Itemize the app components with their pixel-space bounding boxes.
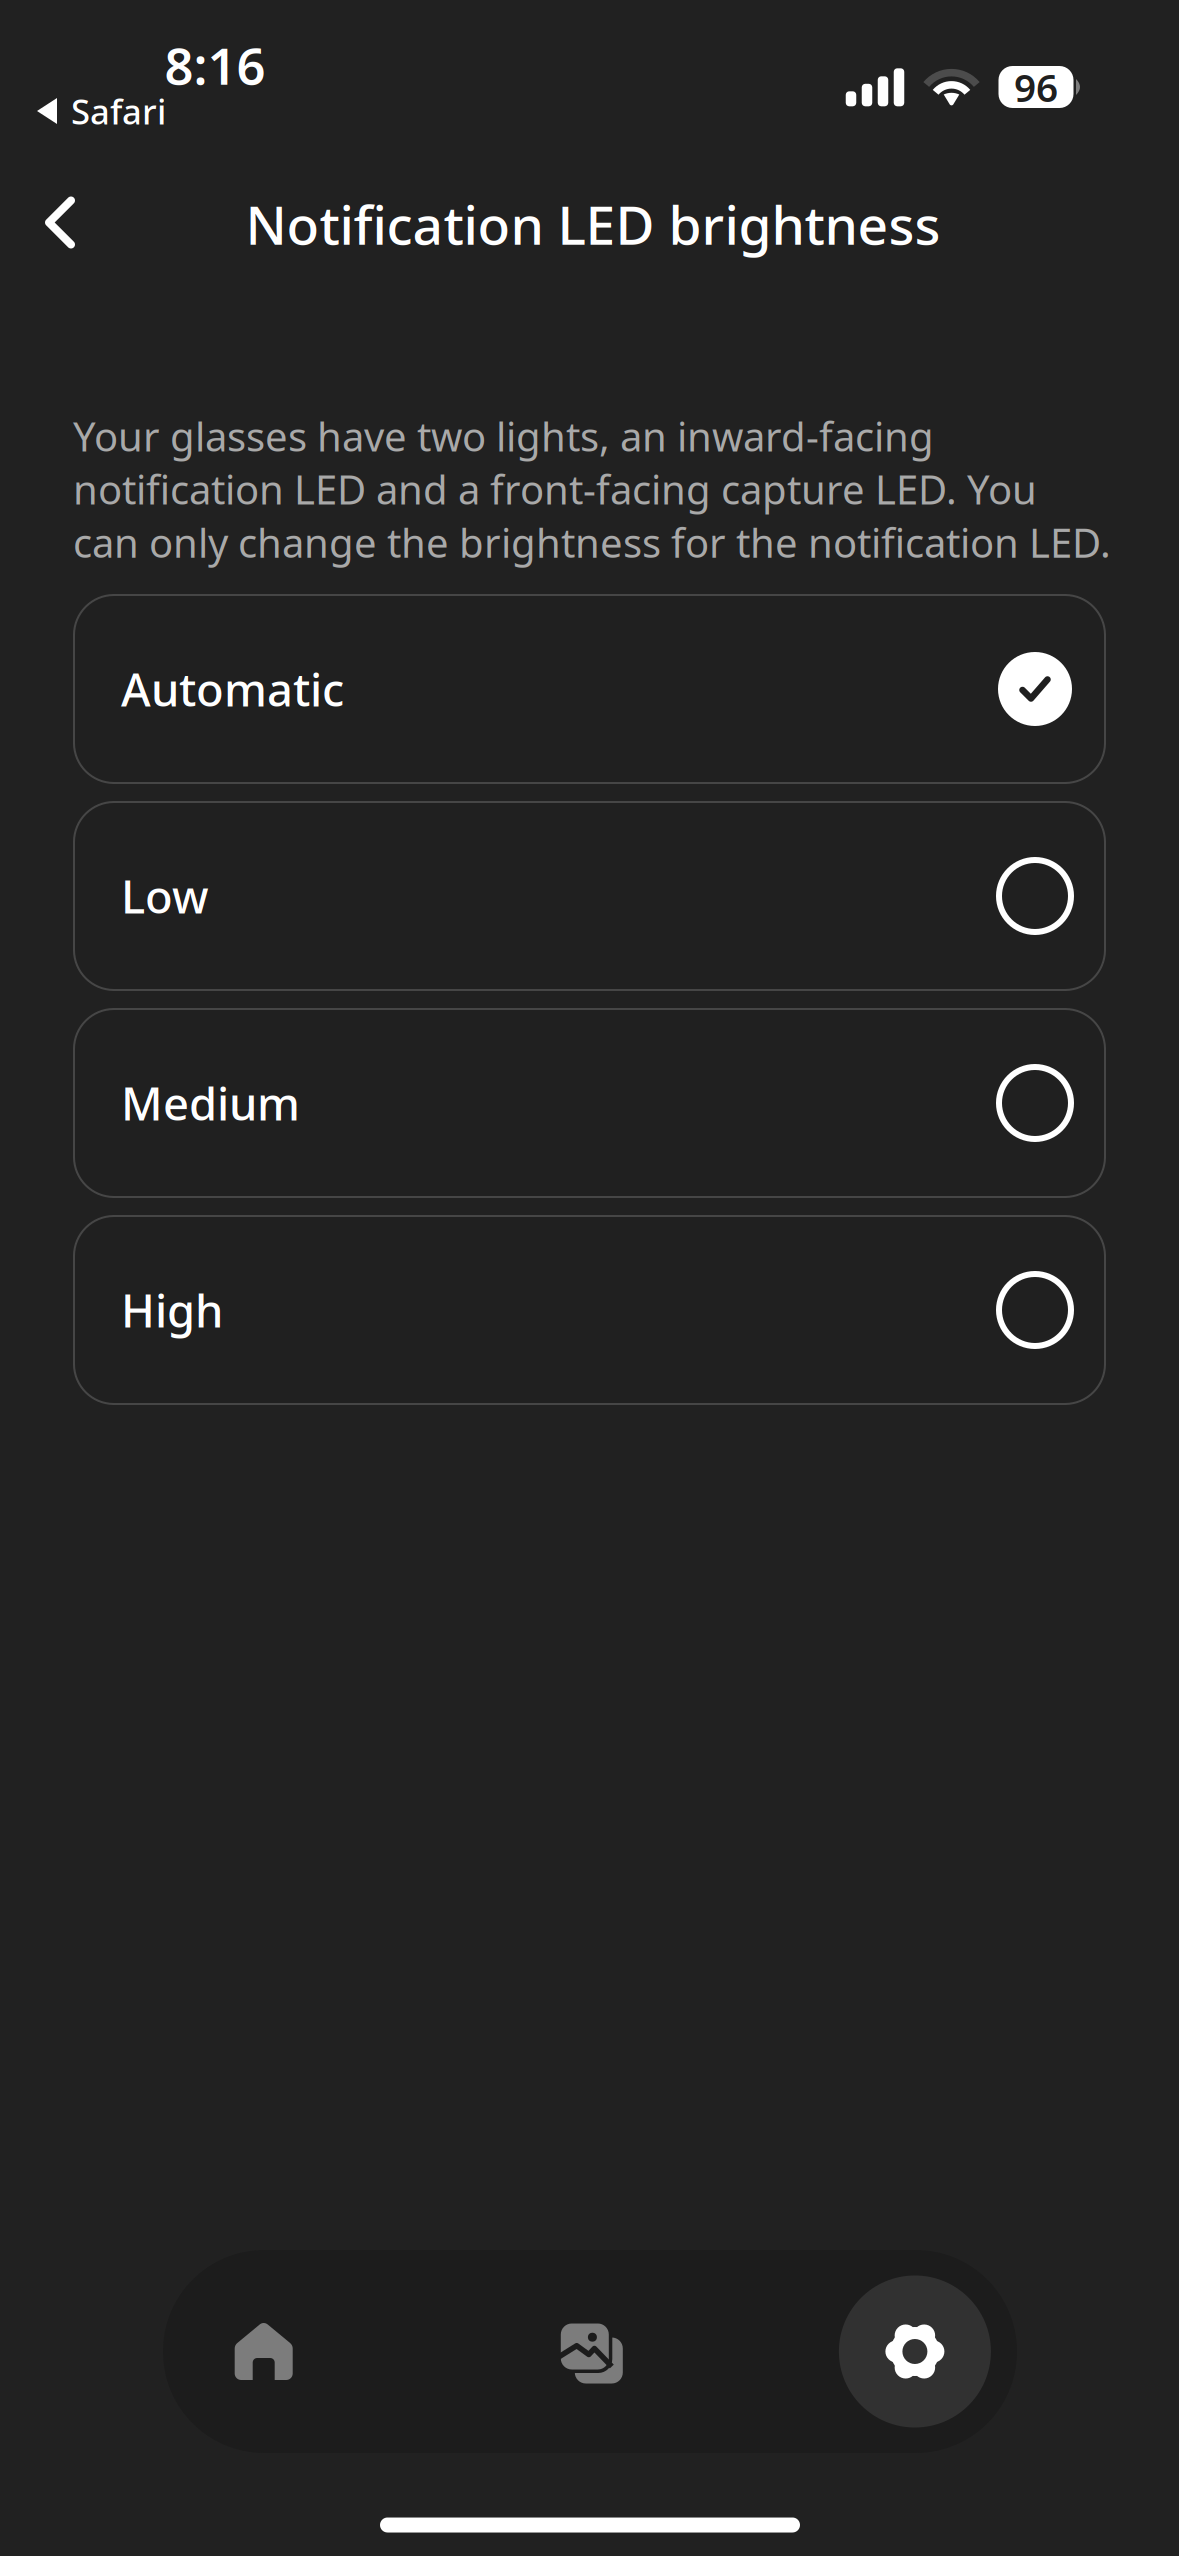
button[interactable]: Settings	[815, 2261, 1015, 2441]
staticText: Safari	[71, 88, 166, 134]
staticText: High	[121, 1280, 223, 1340]
button[interactable]: Automatic	[73, 594, 1106, 784]
staticText: can only change the brightness for the n…	[73, 516, 1111, 569]
button[interactable]: Home	[164, 2261, 364, 2441]
staticText: Medium	[121, 1073, 300, 1133]
staticText: Your glasses have two lights, an inward-…	[73, 409, 934, 462]
button[interactable]: Safari	[36, 88, 166, 134]
button[interactable]: Low	[73, 801, 1106, 991]
staticText: 8:16	[164, 31, 265, 99]
button[interactable]: High	[73, 1215, 1106, 1405]
button[interactable]: Gallery	[490, 2261, 690, 2441]
staticText: Automatic	[121, 659, 344, 719]
staticText: 96	[1014, 61, 1058, 113]
button[interactable]: Back	[1, 170, 119, 274]
button[interactable]: Medium	[73, 1008, 1106, 1198]
staticText: Notification LED brightness	[245, 189, 940, 259]
staticText: Low	[121, 866, 209, 926]
staticText: notification LED and a front-facing capt…	[73, 462, 1037, 515]
